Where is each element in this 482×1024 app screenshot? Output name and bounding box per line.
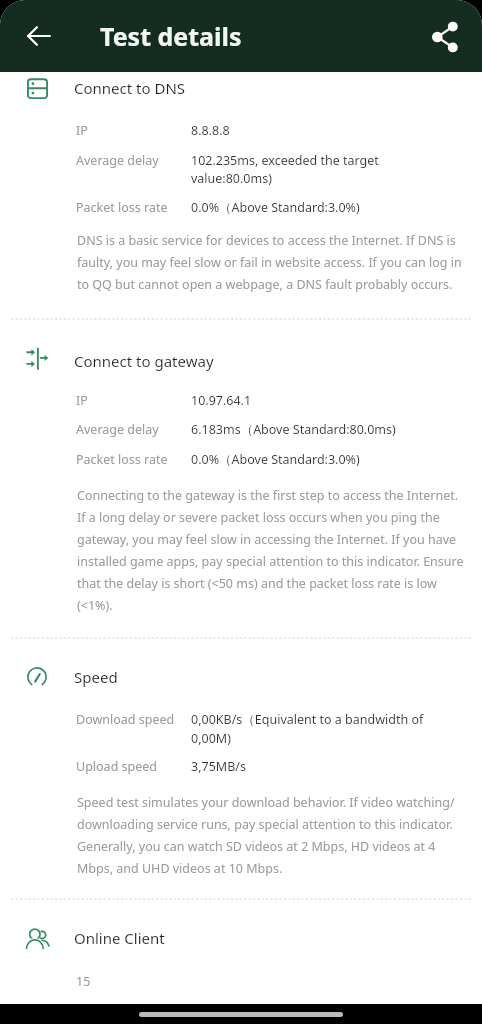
staticText: 0,00KB/s（Equivalent to a bandwidth of 0,…	[191, 711, 443, 746]
staticText: Download speed	[76, 711, 191, 728]
staticText: Connecting to the gateway is the first s…	[77, 487, 465, 614]
staticText: Connect to DNS	[74, 78, 186, 98]
staticText: Packet loss rate	[76, 451, 191, 468]
button[interactable]: Speed	[0, 657, 482, 695]
staticText: Test details	[100, 19, 242, 53]
button[interactable]: Back	[21, 18, 57, 54]
staticText: 0.0%（Above Standard:3.0%)	[191, 199, 443, 216]
staticText: Upload speed	[76, 758, 191, 775]
staticText: 15	[76, 973, 191, 990]
staticText: Connect to gateway	[74, 351, 214, 371]
staticText: 6.183ms（Above Standard:80.0ms)	[191, 421, 443, 438]
staticText: Speed	[74, 667, 118, 687]
staticText: 102.235ms, exceeded the target value:80.…	[191, 152, 443, 186]
staticText: IP	[76, 392, 191, 409]
staticText: IP	[76, 122, 191, 139]
button[interactable]: Connect to DNS	[0, 68, 482, 106]
staticText: 10.97.64.1	[191, 392, 443, 409]
button[interactable]: Share	[425, 17, 465, 57]
button[interactable]: Online Client	[0, 918, 482, 956]
staticText: Speed test simulates your download behav…	[77, 794, 465, 877]
staticText: 3,75MB/s	[191, 758, 443, 775]
staticText: 0.0%（Above Standard:3.0%)	[191, 451, 443, 468]
staticText: DNS is a basic service for devices to ac…	[77, 232, 465, 293]
staticText: Online Client	[74, 928, 165, 948]
staticText: 8.8.8.8	[191, 122, 443, 139]
button[interactable]: Connect to gateway	[0, 341, 482, 379]
staticText: Average delay	[76, 421, 191, 438]
staticText: Packet loss rate	[76, 199, 191, 216]
staticText: Average delay	[76, 152, 191, 169]
